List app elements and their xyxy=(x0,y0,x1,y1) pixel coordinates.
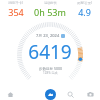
staticText: 6419 xyxy=(28,39,72,65)
staticText: 354 xyxy=(8,6,24,18)
button[interactable]: Start activity xyxy=(45,89,56,100)
staticText: 运动时长 xyxy=(44,1,57,5)
staticText: 4.9 xyxy=(78,6,91,18)
button[interactable]: Home xyxy=(0,88,20,100)
staticText: 128% 完成 xyxy=(43,71,58,75)
staticText: 步数目标 5000 xyxy=(39,66,62,71)
button[interactable]: 运动时长 xyxy=(31,1,69,18)
button[interactable]: Camera xyxy=(80,88,100,100)
staticText: 消耗(千卡) xyxy=(8,1,23,5)
staticText: 7月 23, 2024 xyxy=(36,33,60,38)
button[interactable]: 消耗(千卡) xyxy=(0,1,31,18)
button[interactable]: 7月 23, 2024 xyxy=(17,22,83,88)
button[interactable]: 距离(公里) xyxy=(69,1,100,18)
button[interactable]: Search xyxy=(60,88,80,100)
staticText: 距离(公里) xyxy=(77,1,92,5)
staticText: 0h 53m xyxy=(34,6,66,18)
